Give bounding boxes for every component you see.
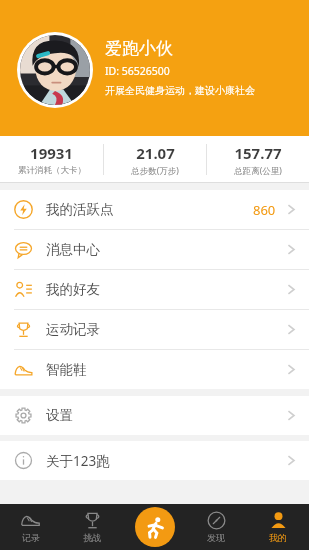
button[interactable]: 设置: [0, 396, 309, 435]
staticText: 发现: [207, 532, 225, 543]
staticText: 记录: [22, 532, 40, 543]
staticText: 累计消耗（大卡）: [18, 165, 86, 176]
staticText: 设置: [46, 407, 73, 424]
staticText: 我的好友: [46, 281, 100, 298]
staticText: 我的: [269, 532, 287, 543]
staticText: 智能鞋: [46, 361, 87, 378]
staticText: 爱跑小伙: [105, 38, 173, 59]
staticText: 开展全民健身运动，建设小康社会: [105, 84, 255, 97]
staticText: 消息中心: [46, 241, 100, 258]
button[interactable]: 运动记录: [0, 310, 309, 349]
staticText: 19931: [30, 143, 73, 163]
staticText: 运动记录: [46, 321, 100, 338]
staticText: 总步数(万步): [131, 165, 179, 177]
staticText: 860: [253, 201, 276, 219]
button[interactable]: 我的活跃点: [0, 190, 309, 229]
staticText: 我的活跃点: [46, 201, 114, 218]
button[interactable]: 我的: [247, 504, 309, 550]
button[interactable]: Start run: [135, 507, 175, 547]
button[interactable]: 发现: [185, 504, 247, 550]
button[interactable]: 我的好友: [0, 270, 309, 309]
button[interactable]: 消息中心: [0, 230, 309, 269]
button[interactable]: 智能鞋: [0, 350, 309, 389]
staticText: ID: 56526500: [105, 64, 170, 78]
button[interactable]: 记录: [0, 504, 61, 550]
staticText: 总距离(公里): [234, 165, 282, 177]
staticText: 关于123跑: [46, 452, 110, 470]
button[interactable]: 关于123跑: [0, 441, 309, 480]
button[interactable]: 挑战: [61, 504, 123, 550]
staticText: 挑战: [83, 532, 101, 543]
staticText: 157.77: [234, 143, 282, 163]
staticText: 21.07: [136, 143, 175, 163]
